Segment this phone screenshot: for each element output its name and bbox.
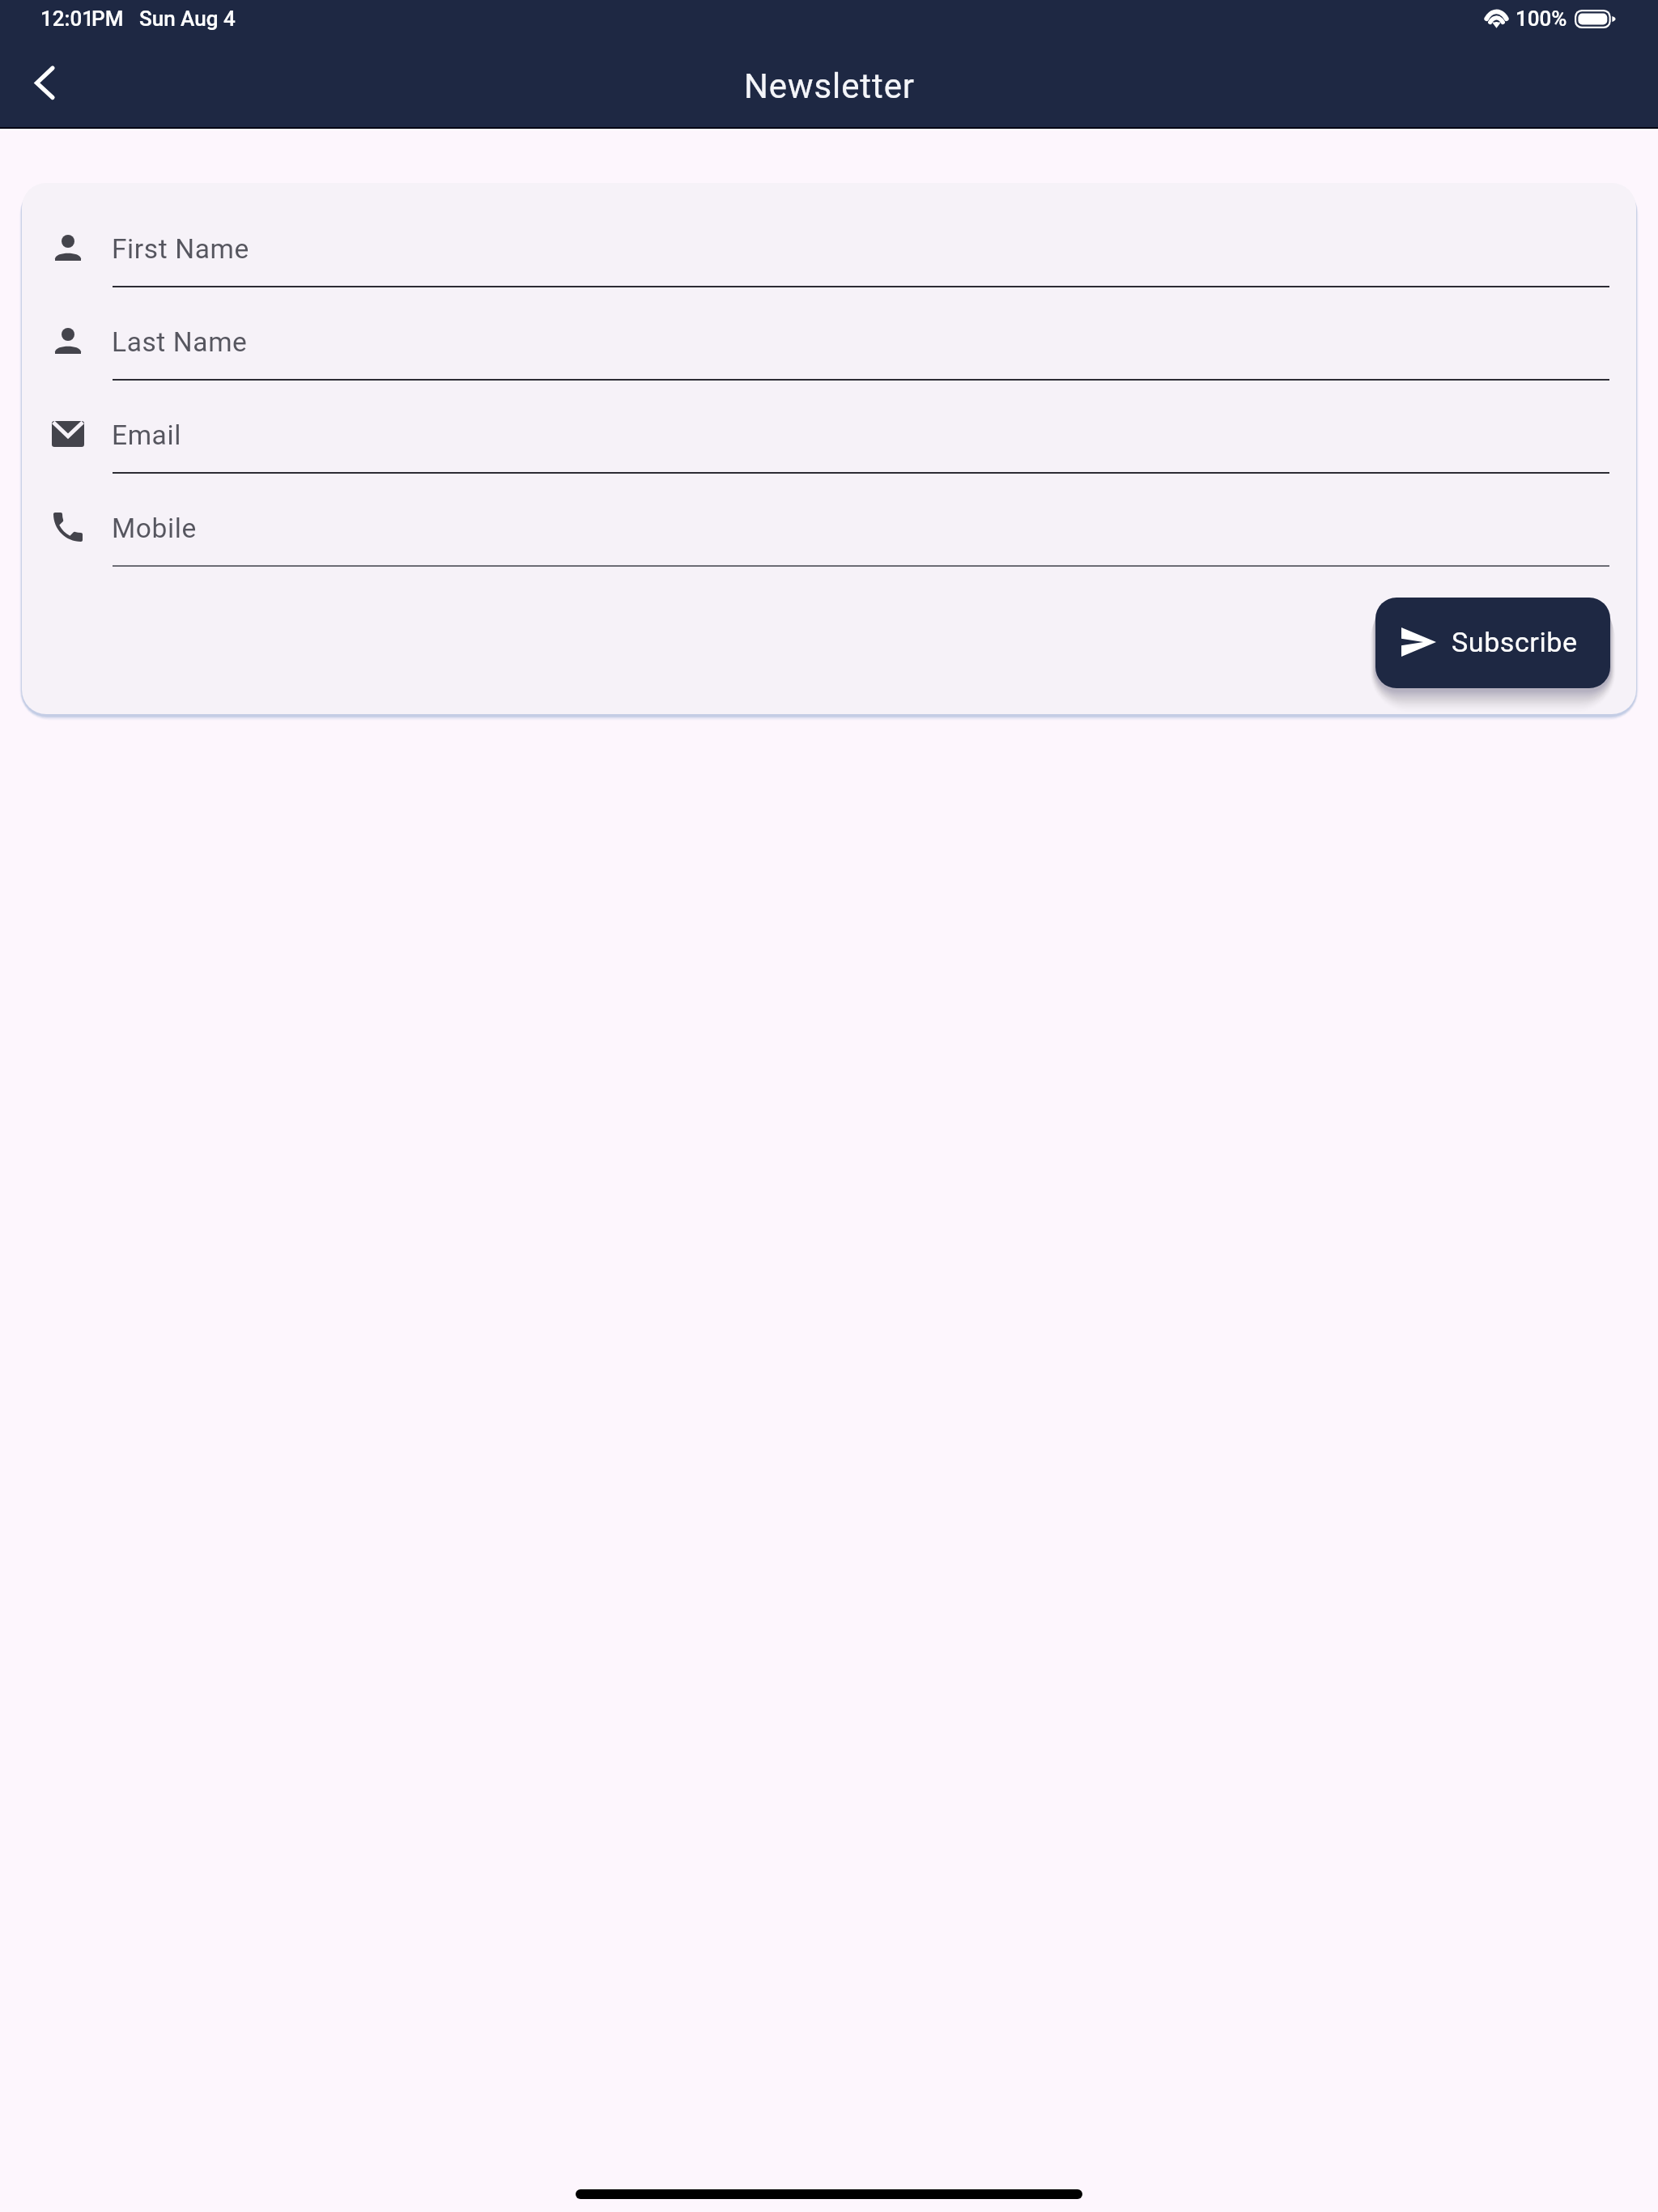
staticText: Subscribe <box>1452 626 1578 658</box>
staticText: Last Name <box>112 326 248 358</box>
button[interactable]: Subscribe <box>1375 598 1610 688</box>
button[interactable]: Last Name <box>22 287 1636 381</box>
staticText: Email <box>112 419 181 451</box>
staticText: PM <box>91 6 124 31</box>
staticText: 100% <box>1516 6 1567 31</box>
staticText: Sun Aug 4 <box>139 6 236 31</box>
button[interactable]: Email <box>22 381 1636 474</box>
staticText: 12:01 <box>40 6 95 31</box>
staticText: First Name <box>112 233 249 265</box>
staticText: Mobile <box>112 513 197 544</box>
button[interactable]: Mobile <box>22 474 1636 567</box>
button[interactable]: First Name <box>22 194 1636 287</box>
button[interactable]: Back <box>11 51 78 117</box>
staticText: Newsletter <box>744 66 915 106</box>
